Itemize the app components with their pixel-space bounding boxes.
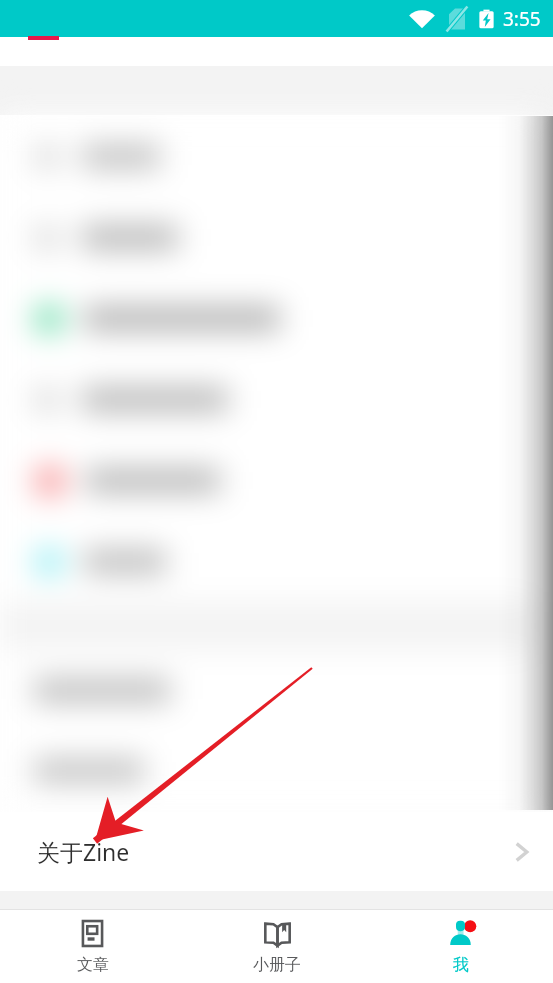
staticText: 关于Zine bbox=[37, 836, 130, 867]
staticText: 小册子 bbox=[253, 955, 301, 975]
staticText: 文章 bbox=[77, 955, 109, 975]
staticText: 我 bbox=[453, 955, 469, 975]
button[interactable]: 文章 bbox=[0, 910, 185, 983]
button[interactable]: 小册子 bbox=[185, 910, 369, 983]
button[interactable]: 关于Zine bbox=[0, 812, 553, 891]
other: 打开关于 Zine bbox=[507, 841, 529, 863]
button[interactable]: 我 bbox=[369, 910, 553, 983]
staticText: 3:55 bbox=[503, 6, 541, 32]
